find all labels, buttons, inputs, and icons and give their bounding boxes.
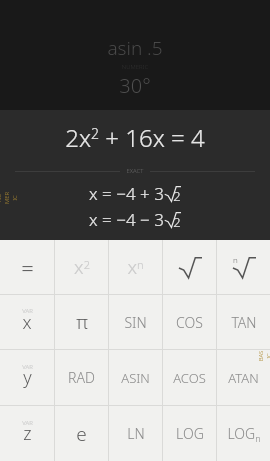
staticText: asin .5 — [0, 35, 270, 61]
button[interactable]: xn — [109, 240, 162, 294]
button[interactable]: ASIN — [109, 350, 162, 405]
staticText: ATAN — [228, 369, 259, 387]
staticText: x = −4 + 3 — [89, 182, 164, 205]
button[interactable]: π — [55, 295, 108, 349]
staticText: TAN — [231, 313, 257, 332]
button[interactable]: Nth root — [217, 240, 270, 294]
staticText: z — [23, 421, 32, 446]
staticText: n — [233, 254, 238, 265]
staticText: 2x2 + 16x = 4 — [0, 121, 270, 154]
staticText: x = −4 − 3 — [89, 208, 164, 231]
staticText: EXACT — [126, 167, 144, 175]
staticText: BASIC — [256, 350, 270, 361]
button[interactable]: ATAN — [217, 350, 270, 405]
button[interactable]: e — [55, 406, 108, 461]
staticText: ACOS — [173, 369, 206, 387]
button[interactable]: NUMERIC — [0, 172, 13, 224]
staticText: x2 — [74, 254, 90, 280]
staticText: π — [76, 309, 88, 335]
button[interactable]: LOG — [163, 406, 216, 461]
staticText: ASIN — [121, 369, 150, 387]
button[interactable]: COS — [163, 295, 216, 349]
button[interactable]: LOGn — [217, 406, 270, 461]
staticText: NUMERIC — [0, 191, 18, 204]
staticText: VAR — [22, 307, 33, 315]
button[interactable]: x2 — [55, 240, 108, 294]
staticText: 2 — [173, 213, 181, 231]
staticText: LN — [127, 424, 145, 443]
button[interactable]: = — [0, 240, 54, 294]
staticText: 2 — [173, 187, 181, 205]
button[interactable]: VAR — [0, 295, 54, 349]
staticText: SIN — [124, 313, 147, 332]
staticText: e — [76, 421, 87, 447]
button[interactable]: SIN — [109, 295, 162, 349]
staticText: VAR — [22, 419, 33, 427]
button[interactable]: RAD — [55, 350, 108, 405]
staticText: 30° — [0, 72, 270, 99]
staticText: = — [21, 252, 34, 282]
staticText: LOG — [176, 424, 204, 443]
button[interactable]: VAR — [0, 350, 54, 405]
button[interactable]: Square root — [163, 240, 216, 294]
button[interactable]: LN — [109, 406, 162, 461]
staticText: y — [23, 365, 32, 390]
staticText: x — [22, 310, 32, 335]
staticText: RAD — [68, 368, 95, 387]
button[interactable]: ACOS — [163, 350, 216, 405]
staticText: LOGn — [227, 424, 261, 444]
staticText: xn — [127, 254, 144, 280]
button[interactable]: BASIC — [259, 336, 270, 376]
staticText: COS — [176, 313, 203, 332]
button[interactable]: VAR — [0, 406, 54, 461]
staticText: VAR — [22, 363, 33, 371]
button[interactable]: TAN — [217, 295, 270, 349]
